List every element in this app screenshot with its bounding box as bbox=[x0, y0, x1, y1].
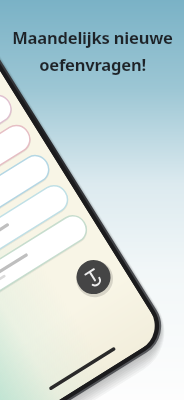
staticText: Maandelijks nieuwe bbox=[12, 26, 173, 48]
button[interactable]: Nieuwe oefenvraag bbox=[105, 249, 128, 272]
staticText: oefenvragen! bbox=[39, 53, 146, 75]
